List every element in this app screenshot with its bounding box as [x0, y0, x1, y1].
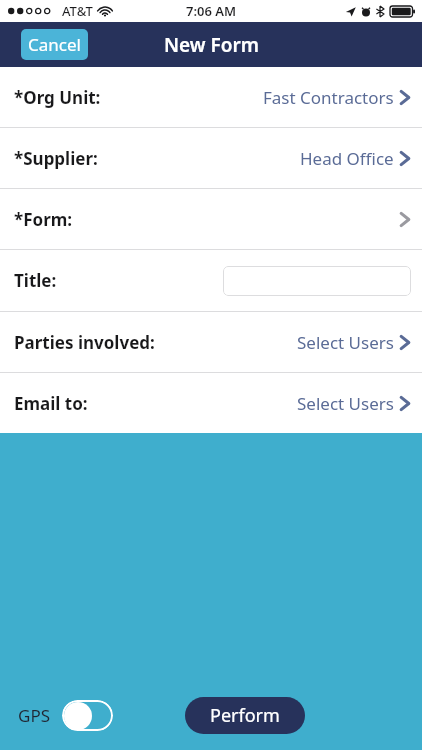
staticText: Cancel [28, 33, 81, 56]
button[interactable]: Parties involved: [0, 312, 422, 372]
staticText: New Form [164, 32, 259, 58]
staticText: *Org Unit: [14, 86, 101, 109]
button[interactable] [223, 266, 411, 296]
staticText: Fast Contractors [263, 86, 394, 109]
button[interactable]: *Supplier: [0, 128, 422, 188]
button[interactable]: Cancel [21, 29, 88, 60]
staticText: 7:06 AM [186, 2, 237, 20]
staticText: GPS [18, 704, 50, 727]
staticText: Select Users [297, 331, 394, 354]
staticText: *Form: [14, 208, 73, 231]
staticText: *Supplier: [14, 147, 98, 170]
staticText: Parties involved: [14, 331, 155, 354]
button[interactable]: *Org Unit: [0, 67, 422, 127]
staticText: Select Users [297, 392, 394, 415]
button[interactable]: Email to: [0, 373, 422, 433]
button[interactable]: Perform [185, 697, 305, 734]
staticText: Head Office [300, 147, 394, 170]
button[interactable]: *Form: [0, 189, 422, 249]
staticText: Perform [210, 703, 280, 728]
staticText: Email to: [14, 392, 88, 415]
staticText: AT&T [62, 2, 93, 20]
staticText: Title: [14, 269, 57, 292]
button[interactable]: GPS toggle [62, 700, 113, 731]
